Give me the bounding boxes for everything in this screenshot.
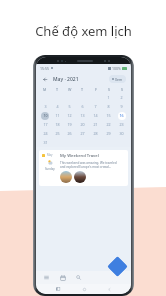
staticText: 3	[44, 104, 47, 109]
staticText: S	[121, 87, 123, 92]
staticText: 14	[93, 113, 98, 118]
button[interactable]: 18	[51, 120, 63, 129]
staticText: 100%	[112, 66, 121, 71]
button[interactable]: Back	[105, 285, 113, 293]
button[interactable]: 26	[63, 129, 76, 138]
staticText: F	[95, 87, 97, 92]
staticText: 1	[107, 95, 110, 100]
button[interactable]: 29	[102, 129, 115, 138]
staticText: Xem	[115, 77, 123, 82]
staticText: 16	[119, 113, 124, 118]
staticText: 15	[106, 113, 111, 118]
staticText: 18	[55, 122, 60, 127]
staticText: 30	[119, 131, 124, 136]
staticText: My Weekend Travel	[60, 153, 99, 159]
button[interactable]: Agenda	[42, 273, 51, 282]
staticText: 27	[80, 131, 85, 136]
button[interactable]: 4	[51, 102, 63, 111]
staticText: 8	[107, 104, 110, 109]
button[interactable]: 23	[115, 120, 128, 129]
button[interactable]: 17	[39, 120, 51, 129]
button[interactable]: 31	[39, 138, 51, 147]
button[interactable]: 13	[76, 111, 89, 120]
button[interactable]: 8	[102, 102, 115, 111]
button[interactable]: Search	[74, 273, 83, 282]
staticText: May · 2021	[53, 76, 79, 83]
staticText: S	[108, 87, 110, 92]
button[interactable]: 20	[76, 120, 89, 129]
button[interactable]: 16	[115, 111, 128, 120]
button[interactable]: 30	[115, 129, 128, 138]
button[interactable]: Recents	[54, 285, 62, 293]
staticText: 12	[67, 113, 72, 118]
button[interactable]: Calendar	[58, 273, 67, 282]
staticText: T	[56, 87, 59, 92]
button[interactable]: 25	[51, 129, 63, 138]
staticText: This weekend was amazing. We traveled an…	[60, 161, 117, 169]
staticText: 21	[93, 122, 98, 127]
staticText: 10	[43, 113, 48, 118]
staticText: 25	[55, 131, 60, 136]
staticText: 15:55	[40, 66, 49, 71]
staticText: 17	[43, 122, 48, 127]
staticText: 5	[68, 104, 71, 109]
button[interactable]: 28	[89, 129, 102, 138]
button[interactable]: 1	[102, 93, 115, 102]
button[interactable]: May	[39, 150, 128, 186]
button[interactable]: 22	[102, 120, 115, 129]
button[interactable]: 11	[51, 111, 63, 120]
staticText: M	[43, 87, 47, 92]
button[interactable]: 14	[89, 111, 102, 120]
button[interactable]: 24	[39, 129, 51, 138]
button[interactable]: Create event	[107, 256, 128, 277]
staticText: 24	[43, 131, 48, 136]
staticText: 13	[80, 113, 85, 118]
staticText: 6	[81, 104, 84, 109]
staticText: 28	[93, 131, 98, 136]
staticText: 23	[119, 122, 124, 127]
button[interactable]: 19	[63, 120, 76, 129]
button[interactable]: 27	[76, 129, 89, 138]
staticText: T	[81, 87, 84, 92]
button[interactable]: Back	[41, 75, 50, 84]
staticText: Chế độ xem lịch	[35, 22, 132, 40]
button[interactable]: 5	[63, 102, 76, 111]
button[interactable]: 15	[102, 111, 115, 120]
button[interactable]: 12	[63, 111, 76, 120]
button[interactable]: 9	[115, 102, 128, 111]
staticText: W	[68, 87, 72, 92]
button[interactable]: 2	[115, 93, 128, 102]
staticText: 2	[120, 95, 123, 100]
button[interactable]: 3	[39, 102, 51, 111]
staticText: 9	[120, 104, 123, 109]
staticText: 22	[106, 122, 111, 127]
staticText: May	[47, 153, 53, 157]
staticText: 4	[56, 104, 59, 109]
staticText: 7	[94, 104, 97, 109]
staticText: 19	[67, 122, 72, 127]
staticText: 29	[106, 131, 111, 136]
button[interactable]: 21	[89, 120, 102, 129]
button[interactable]: 10	[39, 111, 51, 120]
button[interactable]: Xem	[109, 75, 126, 83]
staticText: Sunday	[45, 167, 55, 171]
staticText: 31	[43, 140, 48, 145]
button[interactable]: 6	[76, 102, 89, 111]
staticText: 26	[67, 131, 72, 136]
button[interactable]: Home	[80, 285, 88, 293]
button[interactable]: 7	[89, 102, 102, 111]
staticText: 11	[55, 113, 60, 118]
staticText: 20	[80, 122, 85, 127]
